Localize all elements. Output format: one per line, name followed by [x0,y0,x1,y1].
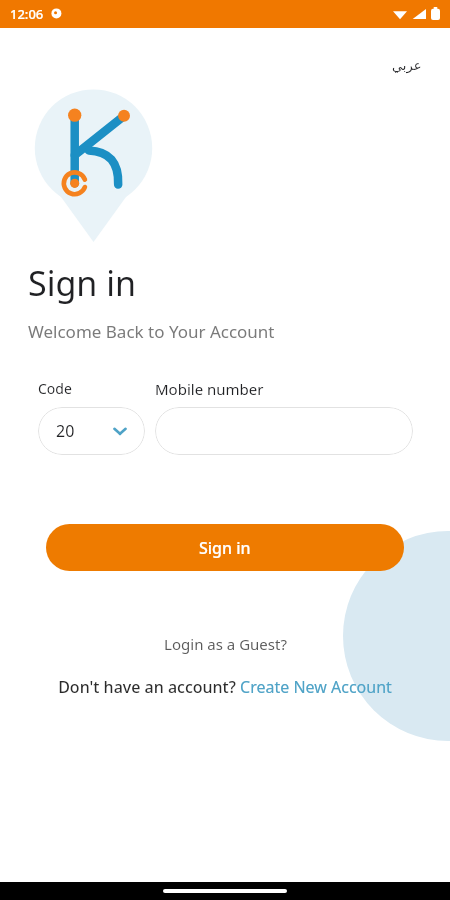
staticText: عربي [392,58,422,73]
staticText: Welcome Back to Your Account [28,320,275,343]
staticText: Sign in [199,537,251,559]
button[interactable]: Login as a Guest? [0,634,450,654]
button[interactable]: 20 [38,407,145,455]
button[interactable]: Mobile number input [155,407,413,455]
staticText: Login as a Guest? [164,634,287,654]
staticText: Don't have an account? Create New Accoun… [58,676,392,698]
button[interactable]: عربي [386,54,428,77]
staticText: 20 [56,420,75,442]
button[interactable]: Don't have an account? Create New Accoun… [48,676,402,698]
button[interactable]: Sign in [46,524,404,571]
staticText: Code [38,379,72,398]
staticText: 12:06 [10,5,44,23]
staticText: Mobile number [155,379,264,399]
other: Expand country code [113,424,127,438]
staticText: Sign in [28,260,136,306]
